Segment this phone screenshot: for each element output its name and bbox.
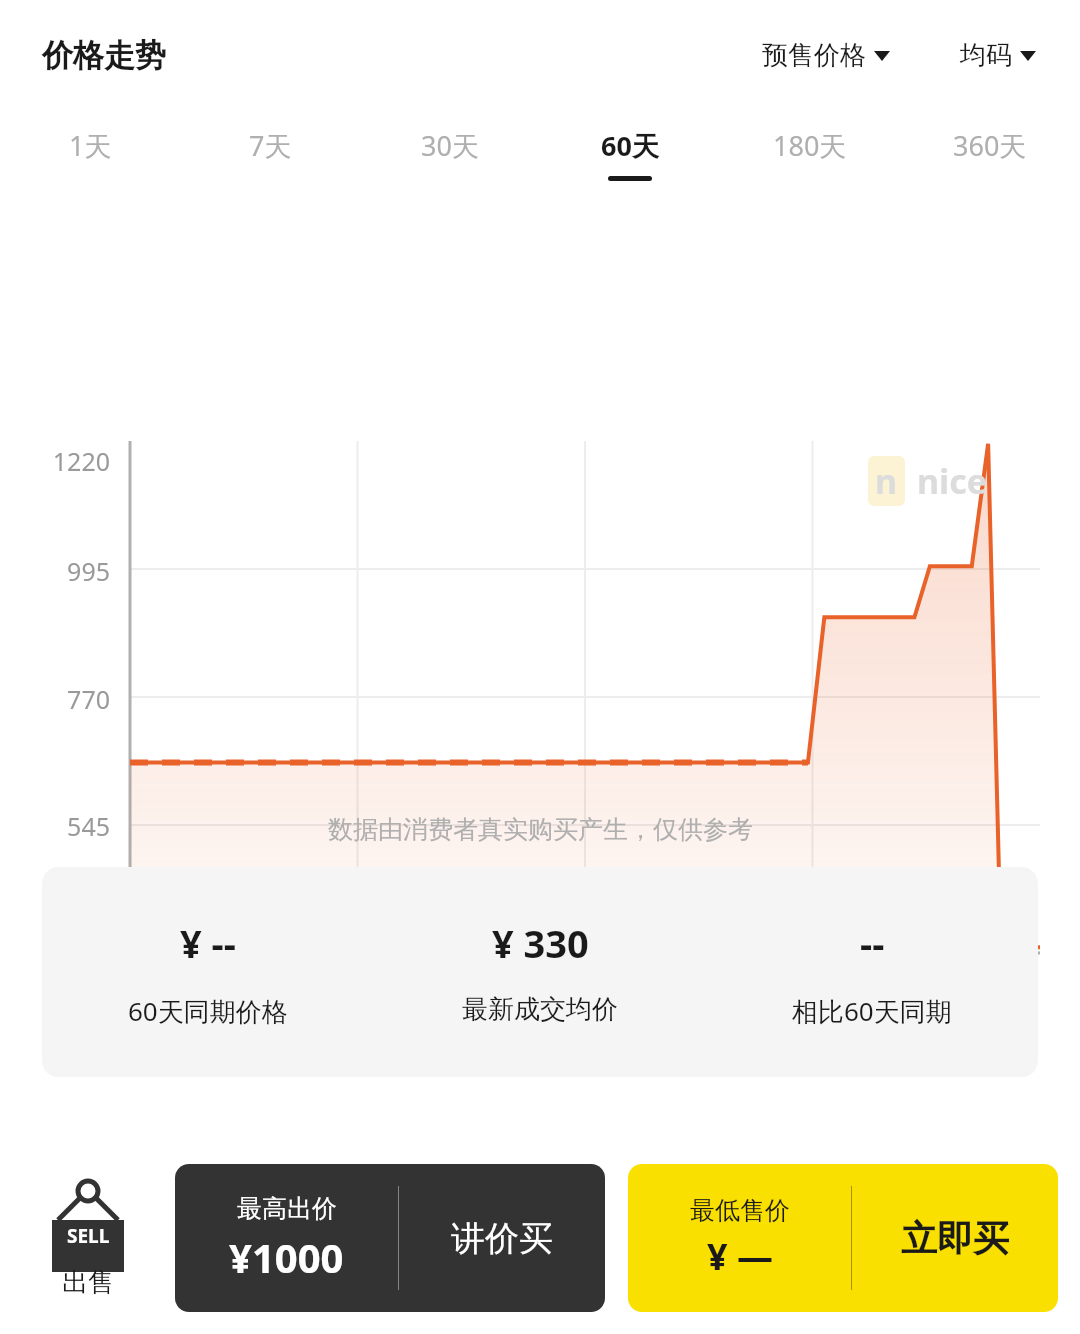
staticText: 770 — [0, 682, 110, 716]
staticText: 数据由消费者真实购买产生，仅供参考 — [328, 814, 753, 845]
button[interactable]: 180天 — [720, 110, 900, 198]
staticText: ¥ 330 — [492, 917, 589, 969]
staticText: 最新成交均价 — [462, 993, 618, 1026]
staticText: 995 — [0, 554, 110, 588]
staticText: 预售价格 — [762, 39, 866, 72]
staticText: 均码 — [960, 39, 1012, 72]
staticText: ¥1000 — [229, 1230, 344, 1284]
staticText: 1220 — [0, 444, 110, 478]
staticText: 最高出价 — [237, 1193, 337, 1224]
staticText: 价格走势 — [42, 36, 166, 75]
button[interactable]: 60天 — [540, 110, 720, 198]
button[interactable]: ¥ 330 — [374, 917, 706, 1026]
button[interactable]: -- — [706, 917, 1038, 1029]
staticText: 08/18 — [514, 966, 654, 1000]
staticText: 09/17 — [933, 966, 1073, 1000]
staticText: 60天 — [601, 127, 659, 164]
staticText: 545 — [0, 809, 110, 843]
other: Sell — [49, 1178, 127, 1254]
staticText: -- — [860, 917, 885, 969]
staticText: 320 — [0, 919, 110, 953]
staticText: ¥ — — [707, 1232, 773, 1281]
button[interactable]: 360天 — [900, 110, 1080, 198]
staticText: 30天 — [421, 127, 479, 164]
staticText: 立即买 — [901, 1216, 1009, 1261]
button[interactable]: ¥ -- — [42, 917, 374, 1029]
staticText: n — [875, 458, 898, 504]
button[interactable]: 7天 — [180, 110, 360, 198]
button[interactable]: 最低售价 — [628, 1164, 1058, 1312]
button[interactable]: 30天 — [360, 110, 540, 198]
staticText: 7天 — [249, 127, 292, 164]
button[interactable]: 预售价格 — [758, 31, 894, 80]
staticText: 360天 — [953, 127, 1027, 164]
staticText: ¥ -- — [180, 917, 236, 969]
staticText: 1天 — [69, 127, 112, 164]
staticText: 相比60天同期 — [792, 993, 952, 1029]
staticText: 出售 — [62, 1266, 114, 1299]
staticText: 60天同期价格 — [128, 993, 288, 1029]
staticText: SELL — [67, 1223, 110, 1249]
staticText: 180天 — [773, 127, 847, 164]
staticText: 最低售价 — [690, 1195, 790, 1226]
button[interactable]: 最高出价 — [175, 1164, 605, 1312]
button[interactable]: Sell — [0, 1142, 175, 1334]
staticText: nice — [917, 458, 988, 504]
button[interactable]: 均码 — [956, 31, 1040, 80]
staticText: 讲价买 — [451, 1217, 553, 1260]
button[interactable]: 1天 — [0, 110, 180, 198]
